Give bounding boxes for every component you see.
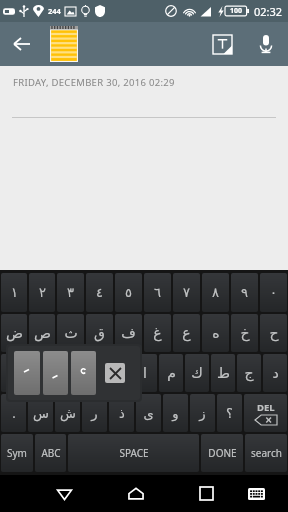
button[interactable]: ذ [109, 394, 134, 432]
button[interactable]: Diacritic [71, 351, 96, 395]
button[interactable]: ه [202, 314, 229, 352]
button[interactable]: DONE [201, 434, 243, 472]
button[interactable]: Diacritic [14, 351, 40, 395]
staticText: 100 [230, 6, 243, 16]
button[interactable]: ٥ [115, 273, 142, 312]
button[interactable]: ا [133, 354, 157, 392]
button[interactable]: search [245, 434, 287, 472]
button[interactable]: ل [107, 354, 131, 392]
button[interactable]: ٦ [144, 273, 171, 312]
button[interactable]: Recent apps [188, 475, 225, 512]
button[interactable]: ز [190, 394, 215, 432]
button[interactable]: Back [0, 22, 44, 66]
staticText: ١ [11, 285, 18, 300]
button[interactable]: ش [55, 394, 80, 432]
staticText: ش [5, 365, 23, 381]
staticText: ؟ [226, 406, 233, 421]
button[interactable]: ث [57, 314, 84, 352]
button[interactable]: ح [260, 314, 287, 352]
staticText: ج [244, 365, 254, 381]
staticText: ى [143, 406, 154, 421]
button[interactable]: ب [81, 354, 105, 392]
button[interactable]: ش [1, 354, 26, 392]
staticText: ح [269, 325, 279, 341]
button[interactable]: Voice input [244, 22, 288, 66]
staticText: ب [86, 365, 100, 381]
button[interactable]: Sym [1, 434, 33, 472]
button[interactable]: ر [82, 394, 107, 432]
staticText: ر [91, 406, 98, 421]
button[interactable]: SPACE [68, 434, 199, 472]
button[interactable]: ٠ [260, 273, 287, 312]
staticText: ع [182, 325, 191, 341]
button[interactable] [50, 26, 78, 62]
button[interactable]: Home [117, 475, 154, 512]
staticText: ٠ [270, 285, 277, 300]
button[interactable]: س [28, 354, 53, 392]
button[interactable]: و [163, 394, 188, 432]
button[interactable]: Diacritic [43, 351, 68, 395]
button[interactable]: ك [185, 354, 209, 392]
button[interactable]: Text format [200, 22, 244, 66]
staticText: ٤ [96, 285, 103, 300]
staticText: DEL [257, 401, 275, 414]
button[interactable]: Delete [244, 394, 287, 432]
staticText: خ [240, 325, 250, 341]
staticText: ٧ [183, 285, 190, 300]
staticText: search [251, 446, 282, 460]
button[interactable]: Close [105, 363, 125, 383]
button[interactable]: ٢ [29, 273, 55, 312]
button[interactable]: . [1, 394, 26, 432]
button[interactable]: Switch keyboard [238, 475, 275, 512]
button[interactable]: ض [1, 314, 27, 352]
staticText: م [167, 365, 176, 381]
button[interactable]: خ [231, 314, 258, 352]
staticText: س [33, 406, 49, 421]
staticText: . [12, 404, 16, 422]
staticText: ABC [41, 446, 61, 460]
staticText: ش [60, 406, 76, 421]
staticText: Sym [7, 446, 27, 460]
staticText: ط [217, 365, 230, 381]
button[interactable]: ج [237, 354, 261, 392]
staticText: ٢ [39, 285, 46, 300]
staticText: 244 [48, 6, 61, 16]
staticText: ك [191, 365, 203, 381]
button[interactable]: Back [46, 475, 83, 512]
staticText: ا [143, 365, 147, 381]
button[interactable]: غ [144, 314, 171, 352]
staticText: ث [64, 325, 78, 341]
staticText: غ [153, 325, 162, 341]
staticText: DONE [208, 446, 237, 460]
staticText: ٥ [125, 285, 132, 300]
staticText: س [32, 365, 50, 381]
button[interactable]: ى [136, 394, 161, 432]
button[interactable]: ٤ [86, 273, 113, 312]
button[interactable]: ق [86, 314, 113, 352]
button[interactable]: ٧ [173, 273, 200, 312]
button[interactable]: ٩ [231, 273, 258, 312]
button[interactable]: ABC [35, 434, 66, 472]
button[interactable]: ص [29, 314, 55, 352]
button[interactable]: ١ [1, 273, 27, 312]
staticText: ٨ [212, 285, 219, 300]
button[interactable]: ع [173, 314, 200, 352]
button[interactable]: د [263, 354, 287, 392]
button[interactable]: ي [55, 354, 79, 392]
staticText: FRIDAY, DECEMBER 30, 2016 02:29 [13, 76, 175, 89]
button[interactable]: س [28, 394, 53, 432]
button[interactable]: ٨ [202, 273, 229, 312]
staticText: 02:32 [254, 4, 283, 19]
staticText: ض [6, 325, 23, 341]
staticText: د [272, 365, 279, 381]
button[interactable]: م [159, 354, 183, 392]
button[interactable]: ف [115, 314, 142, 352]
button[interactable]: ٣ [57, 273, 84, 312]
staticText: ل [114, 365, 125, 381]
button[interactable]: ط [211, 354, 235, 392]
staticText: ه [212, 325, 220, 341]
button[interactable]: ؟ [217, 394, 242, 432]
staticText: و [172, 406, 179, 421]
staticText: ق [94, 325, 105, 341]
staticText: ص [34, 325, 51, 341]
